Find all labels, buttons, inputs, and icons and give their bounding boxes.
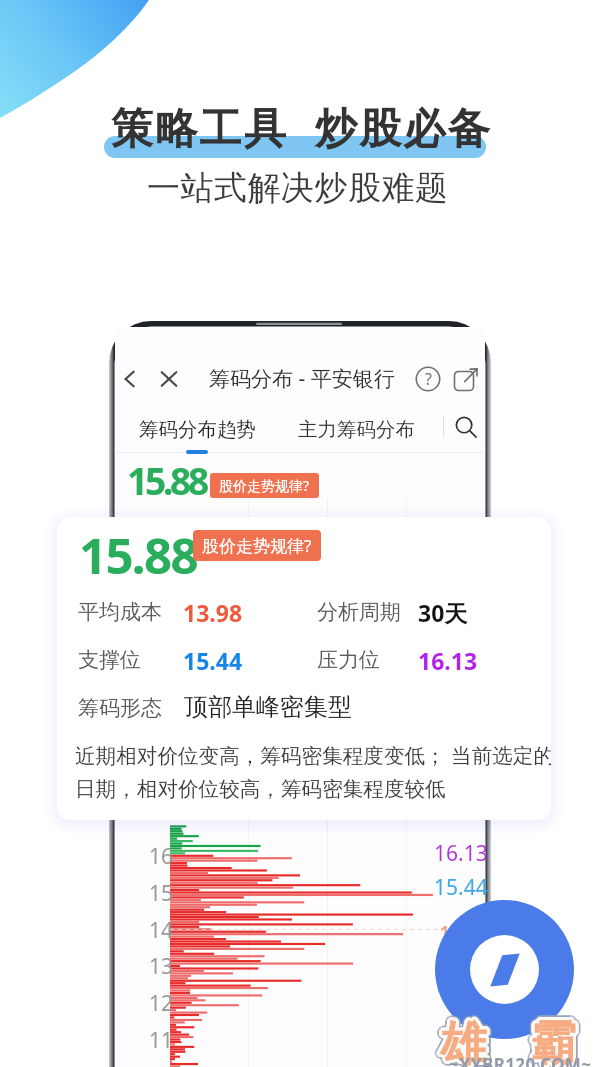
staticText: 雄霸: [422, 1017, 600, 1067]
staticText: 雄霸: [415, 1014, 595, 1067]
staticText: 雄霸: [414, 1016, 594, 1067]
button[interactable]: 股价走势规律?: [210, 473, 319, 498]
staticText: 筹码分布趋势: [139, 417, 256, 442]
staticText: 雄霸: [413, 1014, 593, 1067]
staticText: 雄霸: [416, 1012, 596, 1067]
staticText: 雄霸: [418, 1017, 598, 1067]
button[interactable]: Compass: [435, 900, 574, 1039]
staticText: 支撑位: [78, 647, 141, 673]
staticText: 雄霸: [419, 1018, 599, 1067]
staticText: 雄霸: [421, 1016, 600, 1067]
staticText: 近期相对价位变高，筹码密集程度变低； 当前选定的: [75, 741, 551, 769]
staticText: 雄霸: [415, 1012, 595, 1067]
staticText: 雄霸: [418, 1012, 598, 1067]
staticText: 雄霸: [421, 1014, 600, 1067]
button[interactable]: Back: [117, 366, 143, 392]
staticText: 15.44: [183, 645, 243, 676]
staticText: 雄霸: [415, 1019, 595, 1067]
staticText: 雄霸: [423, 1016, 600, 1067]
staticText: 雄霸: [421, 1013, 600, 1067]
staticText: 雄霸: [415, 1013, 595, 1067]
staticText: 筹码分布 - 平安银行: [209, 364, 395, 393]
staticText: 雄霸: [420, 1011, 600, 1067]
staticText: 雄霸: [421, 1019, 600, 1067]
staticText: 雄霸: [420, 1015, 600, 1067]
staticText: 雄霸: [422, 1012, 600, 1067]
staticText: 雄霸: [415, 1016, 595, 1067]
staticText: 雄霸: [420, 1018, 600, 1067]
staticText: 16.13: [434, 839, 488, 868]
staticText: 雄霸: [420, 1017, 600, 1067]
staticText: 12: [149, 989, 174, 1018]
staticText: 雄霸: [419, 1012, 599, 1067]
button[interactable]: Help: [415, 366, 441, 392]
staticText: 股价走势规律?: [219, 476, 310, 495]
staticText: 14: [149, 916, 174, 945]
staticText: 雄霸: [419, 1019, 599, 1067]
staticText: 雄霸: [422, 1014, 600, 1067]
staticText: 筹码形态: [78, 695, 162, 721]
staticText: 雄霸: [417, 1015, 597, 1067]
staticText: 雄霸: [419, 1016, 599, 1067]
staticText: 雄霸: [423, 1014, 600, 1067]
staticText: 雄霸: [418, 1012, 598, 1067]
staticText: 雄霸: [413, 1016, 593, 1067]
staticText: 日期，相对价位较高，筹码密集程度较低: [75, 776, 446, 802]
staticText: 雄霸: [419, 1013, 599, 1067]
staticText: 雄霸: [419, 1018, 599, 1067]
button[interactable]: Share: [453, 366, 479, 392]
staticText: 雄霸: [415, 1014, 595, 1067]
staticText: 雄霸: [414, 1017, 594, 1067]
staticText: 雄霸: [416, 1014, 596, 1067]
staticText: 雄霸: [417, 1019, 597, 1067]
staticText: 雄霸: [417, 1020, 597, 1067]
staticText: 雄霸: [414, 1015, 594, 1067]
button[interactable]: 股价走势规律?: [193, 530, 321, 561]
staticText: 雄霸: [418, 1019, 598, 1067]
staticText: 雄霸: [416, 1011, 596, 1067]
staticText: 雄霸: [416, 1019, 596, 1067]
staticText: 雄霸: [416, 1017, 596, 1067]
staticText: 30天: [418, 597, 468, 628]
staticText: 雄霸: [414, 1014, 594, 1067]
staticText: 雄霸: [417, 1013, 597, 1067]
button[interactable]: 主力筹码分布: [298, 417, 415, 442]
staticText: ~XYBR120.COM~: [449, 1053, 592, 1067]
staticText: 雄霸: [417, 1012, 597, 1067]
staticText: 雄霸: [419, 1020, 599, 1067]
staticText: 策略工具 炒股必备: [111, 98, 492, 155]
staticText: 15.44: [434, 873, 488, 902]
staticText: 雄霸: [415, 1018, 595, 1067]
staticText: 雄霸: [419, 1010, 599, 1067]
button[interactable]: Search: [454, 415, 478, 439]
staticText: 顶部单峰密集型: [184, 692, 352, 722]
staticText: 雄霸: [417, 1018, 597, 1067]
staticText: 雄霸: [418, 1015, 598, 1067]
staticText: 15: [149, 879, 174, 908]
staticText: 雄霸: [420, 1014, 600, 1067]
staticText: 16: [149, 842, 174, 871]
staticText: 雄霸: [415, 1016, 595, 1067]
staticText: 雄霸: [415, 1015, 595, 1067]
button[interactable]: Close: [156, 366, 182, 392]
staticText: 雄霸: [417, 1014, 597, 1067]
button[interactable]: 筹码分布趋势: [139, 417, 256, 442]
staticText: 雄霸: [423, 1015, 600, 1067]
staticText: 雄霸: [415, 1015, 595, 1067]
staticText: 雄霸: [418, 1018, 598, 1067]
staticText: 雄霸: [418, 1013, 598, 1067]
staticText: 雄霸: [420, 1013, 600, 1067]
staticText: 雄霸: [414, 1012, 594, 1067]
staticText: 压力位: [317, 647, 380, 673]
staticText: 雄霸: [417, 1016, 597, 1067]
staticText: 13.98: [439, 920, 493, 949]
staticText: 雄霸: [422, 1016, 600, 1067]
staticText: 雄霸: [419, 1012, 599, 1067]
staticText: 15.88: [127, 455, 207, 505]
staticText: 雄霸: [416, 1015, 596, 1067]
staticText: 雄霸: [421, 1011, 600, 1067]
staticText: 雄霸: [420, 1016, 600, 1067]
staticText: 11: [149, 1026, 174, 1055]
staticText: 雄霸: [421, 1012, 600, 1067]
staticText: 雄霸: [417, 1010, 597, 1067]
